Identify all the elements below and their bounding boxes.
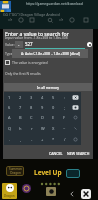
button[interactable]: 1 <box>4 92 15 102</box>
button[interactable]: In all memory <box>4 83 92 91</box>
button[interactable]: F <box>59 112 70 123</box>
staticText: Summon Dragon <box>9 167 22 175</box>
button[interactable]: 2 <box>15 92 26 102</box>
button[interactable]: The value is encrypted <box>5 60 48 65</box>
button[interactable]: E <box>48 112 59 123</box>
button[interactable]: chest <box>46 187 56 196</box>
button[interactable]: Dragon <box>2 183 17 199</box>
button[interactable]: X <box>48 123 59 134</box>
button[interactable]: key <box>70 92 81 102</box>
button[interactable]: action 5 <box>68 16 76 24</box>
staticText: + <box>41 137 44 142</box>
staticText: Q <box>8 126 12 131</box>
button[interactable]: Q <box>4 123 15 134</box>
staticText: The value is encrypted <box>12 60 48 65</box>
staticText: A: Auto (-1.8e+308 .. 1.8e+308) [dbsd] <box>21 51 80 56</box>
button[interactable]: Clear value <box>87 42 92 47</box>
staticText: Dragon <box>4 194 15 198</box>
button[interactable]: B <box>15 112 26 123</box>
button[interactable]: action 3 <box>46 16 54 24</box>
button[interactable]: action 2 <box>28 16 36 24</box>
button[interactable]: / <box>59 134 70 145</box>
button[interactable]: - <box>26 134 37 145</box>
button[interactable]: key <box>70 112 81 123</box>
button[interactable]: action 4 <box>57 16 65 24</box>
staticText: D <box>41 115 44 120</box>
staticText: Type: <box>5 51 14 56</box>
button[interactable]: 7 <box>15 102 26 112</box>
button[interactable]: C <box>26 112 37 123</box>
button[interactable]: r <box>26 123 37 134</box>
button[interactable]: action 6 <box>82 16 90 24</box>
staticText: In all memory <box>37 85 60 90</box>
staticText: Value: <box>5 42 15 47</box>
staticText: 0 <box>52 105 55 110</box>
staticText: Input value from -1.8e+308 to 1.8e+308 <box>5 35 68 40</box>
staticText: 3 <box>30 95 33 100</box>
button[interactable]: 6 <box>4 102 15 112</box>
staticText: - <box>18 42 20 47</box>
staticText: h <box>19 126 22 131</box>
staticText: 5 <box>52 95 55 100</box>
staticText: 8 <box>30 105 33 110</box>
staticText: NEW SEARCH <box>67 151 90 156</box>
button[interactable]: 5 <box>48 92 59 102</box>
button[interactable]: NEW SEARCH <box>65 149 92 158</box>
button[interactable]: : <box>59 92 70 102</box>
button[interactable]: key <box>70 134 81 145</box>
button[interactable]: Summon Dragon <box>6 166 24 176</box>
staticText: X <box>52 126 55 131</box>
staticText: GG ("GG") Dragon Village Android <box>3 12 60 17</box>
button[interactable]: A: Auto (-1.8e+308 .. 1.8e+308) [dbsd] <box>12 49 88 58</box>
button[interactable]: * <box>48 134 59 145</box>
staticText: C <box>30 115 33 120</box>
button[interactable]: 0 <box>48 102 59 112</box>
button[interactable]: key <box>70 123 81 134</box>
button[interactable]: + <box>37 134 48 145</box>
staticText: ; <box>64 105 66 110</box>
button[interactable]: Shop <box>66 169 80 178</box>
staticText: ~ <box>63 126 66 131</box>
button[interactable]: key <box>70 102 81 112</box>
staticText: W <box>41 126 45 131</box>
staticText: : <box>64 95 66 100</box>
staticText: Level Up <box>34 168 62 177</box>
button[interactable]: 4 <box>37 92 48 102</box>
staticText: 1 <box>8 95 11 100</box>
button[interactable]: - <box>15 41 23 48</box>
staticText: A <box>8 115 11 120</box>
staticText: - <box>31 137 33 142</box>
staticText: CANCEL <box>49 151 63 156</box>
staticText: B <box>19 115 22 120</box>
button[interactable]: action 0 <box>6 16 14 24</box>
button[interactable]: Back <box>68 190 76 198</box>
staticText: . <box>9 137 11 142</box>
button[interactable]: A <box>4 112 15 123</box>
staticText: 4 <box>41 95 44 100</box>
button[interactable]: badge <box>22 184 31 193</box>
staticText: E <box>52 115 55 120</box>
staticText: 6 <box>8 105 11 110</box>
button[interactable]: h <box>15 123 26 134</box>
staticText: F <box>63 115 66 120</box>
staticText: / <box>64 137 66 142</box>
button[interactable]: 3 <box>26 92 37 102</box>
staticText: 7 <box>19 105 22 110</box>
button[interactable]: , <box>15 134 26 145</box>
button[interactable]: CANCEL <box>47 149 65 158</box>
button[interactable]: 8 <box>26 102 37 112</box>
staticText: r <box>31 126 33 131</box>
staticText: 2 <box>19 95 22 100</box>
staticText: 9 <box>41 105 44 110</box>
button[interactable]: ; <box>59 102 70 112</box>
button[interactable]: D <box>37 112 48 123</box>
button[interactable]: W <box>37 123 48 134</box>
button[interactable]: action 1 <box>17 16 25 24</box>
staticText: Enter a value to search for <box>5 30 69 37</box>
button[interactable]: Close GameGuardian <box>81 189 91 199</box>
staticText: 527 <box>25 41 33 47</box>
button[interactable]: ~ <box>59 123 70 134</box>
button[interactable]: 9 <box>37 102 48 112</box>
staticText: https://gameguardian.net/download <box>26 1 83 5</box>
